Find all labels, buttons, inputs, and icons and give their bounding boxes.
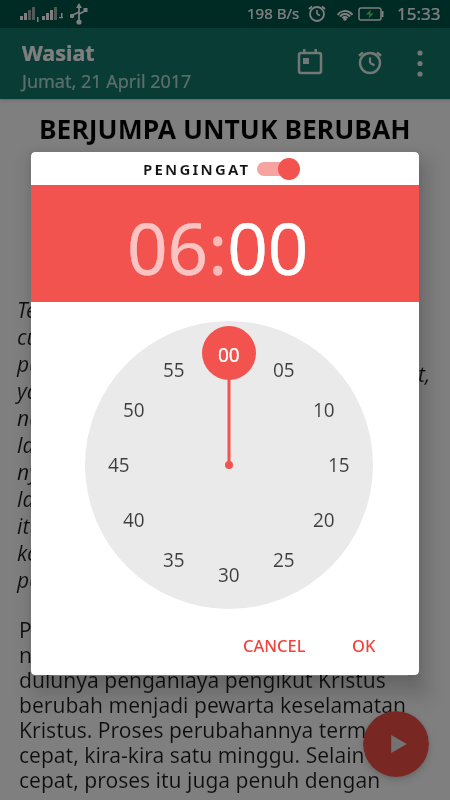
button[interactable]: PENGINGAT [31, 152, 419, 185]
staticText: 45 [108, 452, 130, 478]
button[interactable]: OK [336, 627, 392, 663]
staticText: 35 [163, 547, 185, 573]
staticText: CANCEL [243, 634, 306, 656]
staticText: layaknya seorang murid yang setia [17, 485, 345, 514]
staticText: 06:00 [127, 199, 309, 296]
staticText: 00 [218, 342, 240, 368]
staticText: OK [352, 634, 376, 656]
button[interactable]: 00 [31, 302, 419, 675]
staticText: 55 [163, 357, 185, 383]
staticText: 15:33 [397, 2, 441, 25]
staticText: BERJUMPA UNTUK BERUBAH [39, 111, 411, 147]
staticText: 40 [123, 507, 145, 533]
button[interactable] [408, 51, 432, 75]
staticText: berubah menjadi pewarta keselamatan [19, 691, 407, 720]
staticText: Tetapi bangunlah dan berdirilah, [17, 296, 325, 325]
button[interactable] [363, 711, 429, 777]
staticText: kota itu dan akan dikatakan kepadamu [17, 539, 385, 568]
staticText: cepat, kira-kira satu minggu. Selain [19, 741, 365, 770]
button[interactable] [358, 51, 382, 75]
staticText: layak bagi semua orang yang percaya [17, 431, 374, 460]
staticText: PENGINGAT [143, 159, 251, 179]
staticText: yang akan menjadi pelayan dan saksi [17, 377, 369, 406]
staticText: pada hari ini; sesungguhnya engkau [17, 350, 358, 379]
staticText: 30 [218, 562, 240, 588]
staticText: Paulus yang sebelumnya bernama Saul [19, 616, 407, 645]
staticText: 10 [313, 397, 335, 423]
staticText: nanti tentang segala sesuatu yang [17, 404, 340, 433]
staticText: Kristus. Proses perubahannya termasuk [19, 716, 413, 745]
staticText: cepat, proses itu juga penuh dengan [19, 766, 381, 795]
staticText: Jumat, 21 April 2017 [22, 69, 192, 94]
staticText: 15 [328, 452, 350, 478]
staticText: t, [418, 360, 431, 389]
button[interactable] [298, 51, 322, 75]
staticText: itulah yang harus engkau kerjakan di [17, 512, 366, 541]
staticText: 50 [123, 397, 145, 423]
staticText: perihal semua yang ditugaskan. [17, 566, 318, 595]
staticText: 198 B/s [247, 3, 300, 23]
staticText: Wasiat [22, 38, 95, 67]
staticText: dulunya penganiaya pengikut Kristus [19, 666, 386, 695]
staticText: nyata sekali perubahan hidupnya yang [19, 641, 402, 670]
staticText: nyata kepadamu tentang Aku dan juga [17, 458, 382, 487]
staticText: 20 [313, 507, 335, 533]
staticText: cukuplah kasih karunia-Ku bagimu, [17, 323, 349, 352]
button[interactable]: CANCEL [227, 627, 321, 663]
staticText: 25 [273, 547, 295, 573]
staticText: 05 [273, 357, 295, 383]
